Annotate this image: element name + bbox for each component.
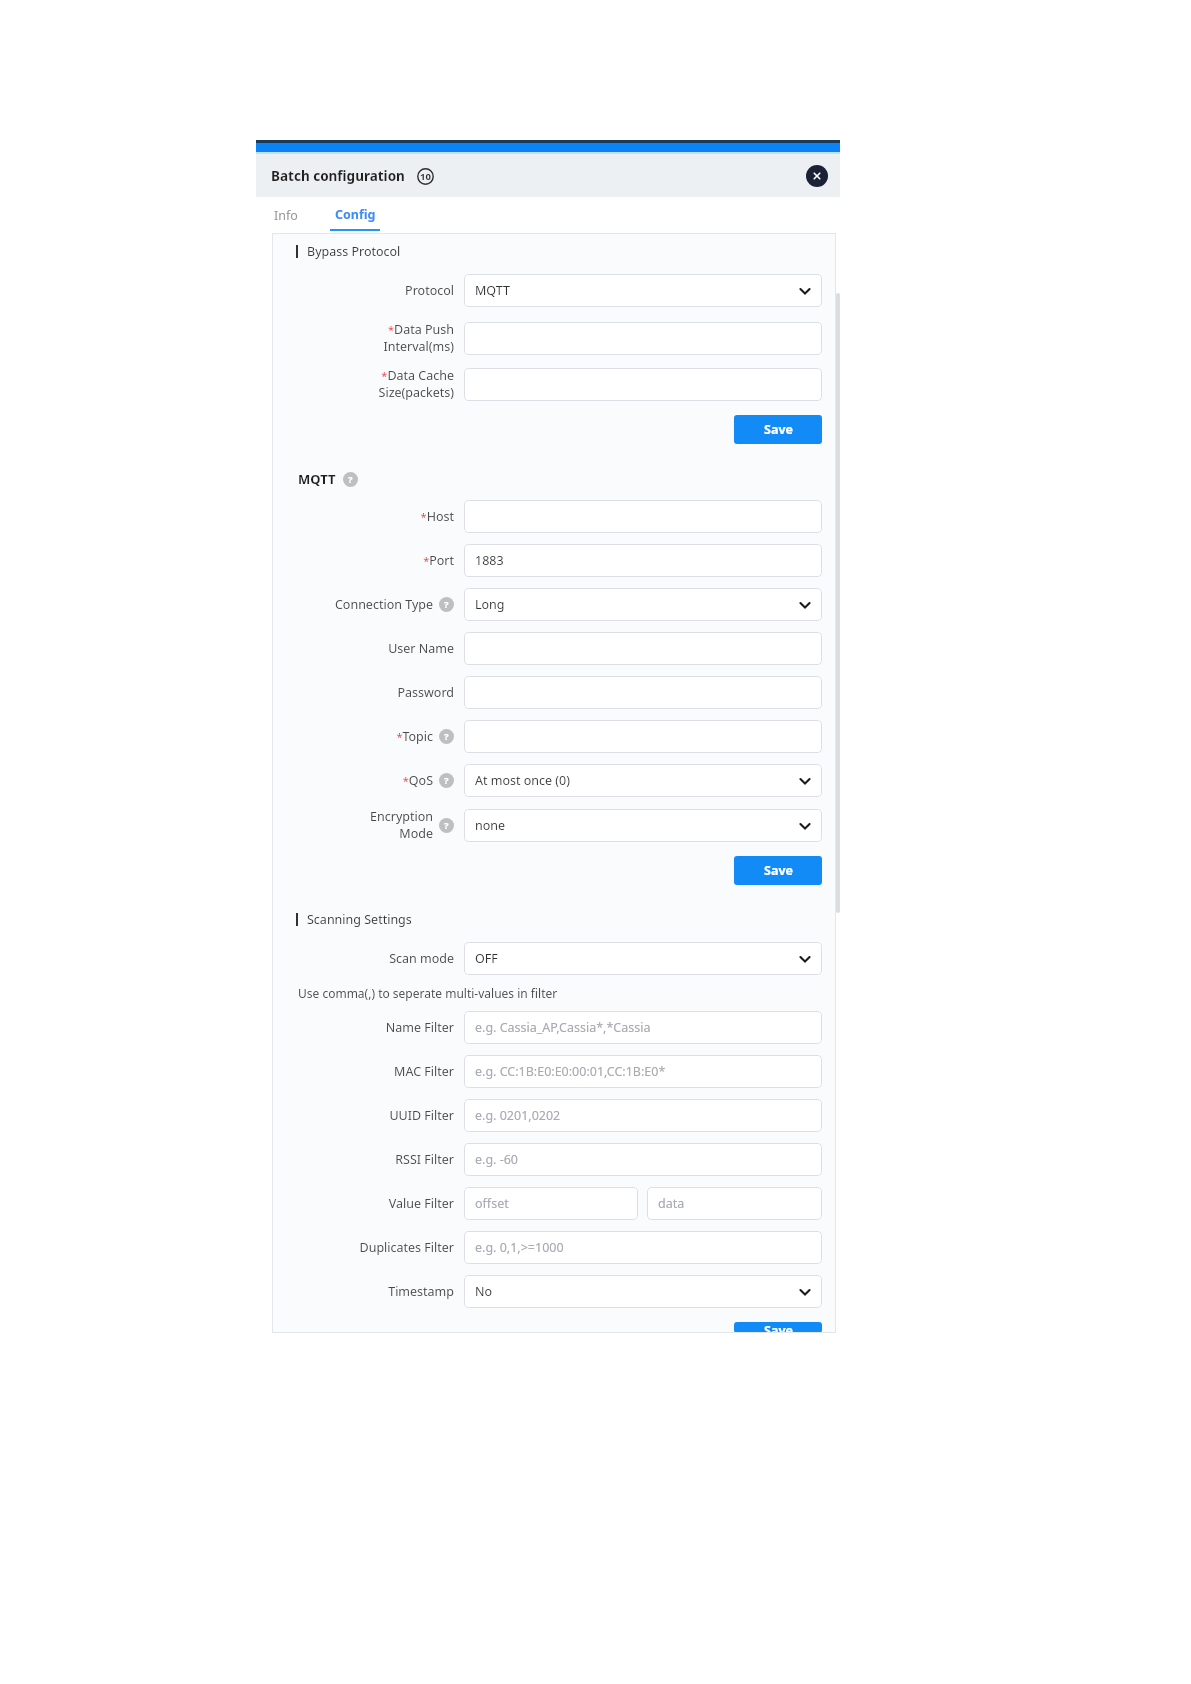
staticText: ? (348, 473, 353, 486)
button[interactable]: none (464, 809, 822, 842)
staticText: Batch configuration (271, 167, 405, 185)
button[interactable]: No (464, 1275, 822, 1308)
button[interactable]: Config (330, 197, 380, 233)
staticText: No (475, 1283, 493, 1300)
staticText: *Data Push Interval(ms) (383, 321, 454, 355)
staticText: e.g. Cassia_AP,Cassia*,*Cassia (475, 1019, 651, 1036)
button[interactable] (464, 500, 822, 533)
other: Open dropdown (799, 953, 811, 965)
other: Open dropdown (799, 1286, 811, 1298)
staticText: Duplicates Filter (359, 1239, 454, 1256)
staticText: Connection Type (334, 596, 433, 613)
staticText: OFF (475, 950, 498, 967)
button[interactable]: e.g. -60 (464, 1143, 822, 1176)
other: Open dropdown (799, 775, 811, 787)
staticText: e.g. CC:1B:E0:E0:00:01,CC:1B:E0* (475, 1063, 666, 1080)
staticText: Save (764, 1322, 793, 1333)
button[interactable]: Save (734, 1322, 822, 1333)
button[interactable] (464, 632, 822, 665)
staticText: *Topic (396, 728, 433, 745)
staticText: *QoS (402, 772, 433, 789)
staticText: MQTT (475, 282, 510, 299)
staticText: Config (335, 206, 376, 223)
staticText: Name Filter (385, 1019, 454, 1036)
button[interactable]: At most once (0) (464, 764, 822, 797)
staticText: MAC Filter (394, 1063, 454, 1080)
staticText: offset (475, 1195, 509, 1212)
staticText: MQTT (298, 470, 336, 488)
staticText: data (658, 1195, 685, 1212)
staticText: Use comma(,) to seperate multi-values in… (298, 985, 558, 1001)
other: Open dropdown (799, 285, 811, 297)
button[interactable]: e.g. 0,1,>=1000 (464, 1231, 822, 1264)
button[interactable]: Close (806, 165, 828, 187)
staticText: ? (444, 819, 449, 832)
staticText: Save (764, 862, 793, 879)
staticText: ? (444, 774, 449, 787)
staticText: e.g. -60 (475, 1151, 519, 1168)
staticText: Long (475, 596, 505, 613)
button[interactable]: e.g. Cassia_AP,Cassia*,*Cassia (464, 1011, 822, 1044)
button[interactable]: MQTT (464, 274, 822, 307)
button[interactable]: OFF (464, 942, 822, 975)
staticText: *Data Cache Size(packets) (378, 367, 454, 401)
staticText: none (475, 817, 506, 834)
staticText: User Name (388, 640, 454, 657)
staticText: Value Filter (388, 1195, 454, 1212)
staticText: RSSI Filter (395, 1151, 454, 1168)
button[interactable]: e.g. CC:1B:E0:E0:00:01,CC:1B:E0* (464, 1055, 822, 1088)
staticText: Scan mode (389, 950, 454, 967)
staticText: Encryption Mode (370, 808, 433, 842)
button[interactable]: Info (272, 197, 300, 233)
staticText: Bypass Protocol (307, 243, 401, 260)
staticText: Password (397, 684, 454, 701)
button[interactable] (464, 720, 822, 753)
staticText: ? (444, 730, 449, 743)
button[interactable] (464, 322, 822, 355)
button[interactable]: 1883 (464, 544, 822, 577)
staticText: Info (274, 207, 298, 224)
staticText: Scanning Settings (307, 911, 412, 928)
staticText: UUID Filter (389, 1107, 454, 1124)
staticText: At most once (0) (475, 772, 570, 789)
other: Open dropdown (799, 820, 811, 832)
staticText: 1883 (475, 552, 504, 569)
staticText: 10 (420, 170, 431, 183)
button[interactable] (464, 676, 822, 709)
staticText: Protocol (405, 282, 454, 299)
button[interactable]: Save (734, 415, 822, 444)
staticText: Save (764, 421, 793, 438)
button[interactable]: e.g. 0201,0202 (464, 1099, 822, 1132)
staticText: *Port (423, 552, 454, 569)
staticText: Timestamp (388, 1283, 454, 1300)
staticText: e.g. 0201,0202 (475, 1107, 561, 1124)
button[interactable]: offset (464, 1187, 638, 1220)
button[interactable]: data (647, 1187, 822, 1220)
staticText: *Host (420, 508, 454, 525)
other: Open dropdown (799, 599, 811, 611)
button[interactable]: Long (464, 588, 822, 621)
staticText: ? (444, 598, 449, 611)
staticText: e.g. 0,1,>=1000 (475, 1239, 564, 1256)
button[interactable]: Save (734, 856, 822, 885)
button[interactable] (464, 368, 822, 401)
